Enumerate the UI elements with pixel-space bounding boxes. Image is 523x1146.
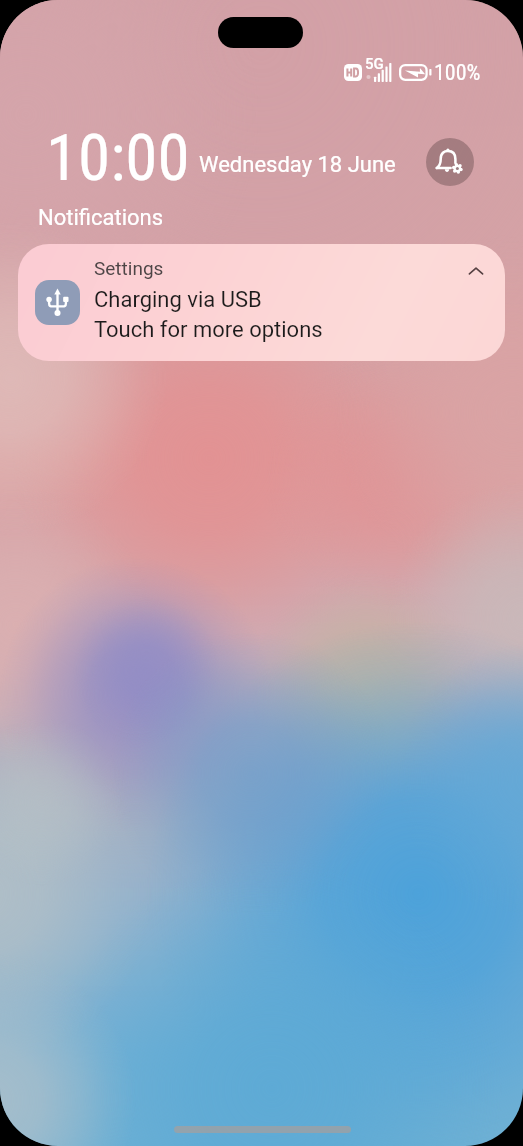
staticText: 100%: [434, 60, 481, 86]
button[interactable]: Notification settings: [426, 138, 474, 186]
staticText: Notifications: [38, 205, 164, 231]
staticText: Touch for more options: [94, 317, 323, 343]
button[interactable]: Settings: [18, 244, 505, 361]
staticText: Charging via USB: [94, 287, 262, 313]
staticText: 10:00: [46, 120, 190, 196]
staticText: Wednesday 18 June: [199, 152, 396, 178]
staticText: 5G: [365, 55, 384, 73]
button[interactable]: Collapse notification: [456, 251, 496, 291]
staticText: Settings: [94, 257, 164, 279]
